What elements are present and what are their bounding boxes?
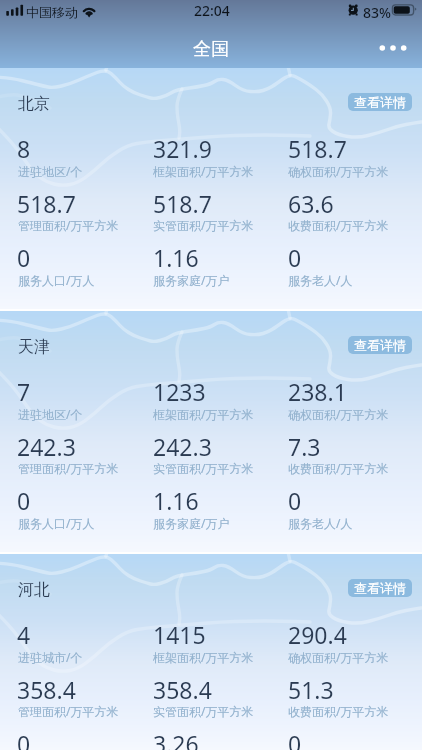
staticText: 242.3: [17, 431, 76, 462]
staticText: 服务老人/人: [288, 272, 353, 288]
staticText: 242.3: [153, 431, 212, 462]
staticText: 290.4: [288, 619, 347, 650]
staticText: 服务家庭/万户: [153, 515, 230, 531]
staticText: 确权面积/万平方米: [288, 649, 389, 665]
staticText: 83%: [363, 3, 391, 22]
staticText: 7: [17, 376, 31, 407]
staticText: 框架面积/万平方米: [153, 163, 254, 179]
staticText: 框架面积/万平方米: [153, 649, 254, 665]
staticText: 框架面积/万平方米: [153, 406, 254, 422]
button[interactable]: 天津: [0, 311, 422, 552]
button[interactable]: More options: [370, 32, 416, 64]
staticText: 1233: [153, 376, 206, 407]
staticText: 0: [17, 242, 31, 273]
staticText: 确权面积/万平方米: [288, 406, 389, 422]
staticText: 0: [288, 242, 302, 273]
staticText: 0: [288, 485, 302, 516]
button[interactable]: 北京: [0, 68, 422, 309]
staticText: 7.3: [288, 431, 321, 462]
staticText: 0: [17, 728, 31, 750]
staticText: 河北: [18, 580, 50, 600]
staticText: 进驻地区/个: [18, 406, 83, 422]
staticText: 查看详情: [354, 580, 406, 596]
button[interactable]: 查看详情: [348, 93, 412, 111]
staticText: 358.4: [17, 674, 76, 705]
staticText: 北京: [18, 94, 50, 114]
staticText: 8: [17, 133, 31, 164]
staticText: 管理面积/万平方米: [18, 217, 119, 233]
staticText: 1415: [153, 619, 206, 650]
button[interactable]: 查看详情: [348, 336, 412, 354]
button[interactable]: 查看详情: [348, 579, 412, 597]
staticText: 收费面积/万平方米: [288, 217, 389, 233]
staticText: 321.9: [153, 133, 212, 164]
staticText: 天津: [18, 337, 50, 357]
staticText: 管理面积/万平方米: [18, 460, 119, 476]
staticText: 实管面积/万平方米: [153, 217, 254, 233]
staticText: 确权面积/万平方米: [288, 163, 389, 179]
staticText: 0: [17, 485, 31, 516]
staticText: 518.7: [153, 188, 212, 219]
staticText: 518.7: [288, 133, 347, 164]
staticText: 51.3: [288, 674, 334, 705]
staticText: 服务人口/万人: [18, 272, 95, 288]
staticText: 22:04: [194, 1, 230, 20]
staticText: 3.26: [153, 728, 199, 750]
staticText: 服务家庭/万户: [153, 272, 230, 288]
staticText: 服务人口/万人: [18, 515, 95, 531]
staticText: 0: [288, 728, 302, 750]
staticText: 518.7: [17, 188, 76, 219]
staticText: 中国移动: [26, 4, 78, 20]
staticText: 238.1: [288, 376, 347, 407]
staticText: 63.6: [288, 188, 334, 219]
staticText: 1.16: [153, 242, 199, 273]
staticText: 4: [17, 619, 31, 650]
staticText: 服务老人/人: [288, 515, 353, 531]
staticText: 收费面积/万平方米: [288, 460, 389, 476]
staticText: 实管面积/万平方米: [153, 460, 254, 476]
staticText: 管理面积/万平方米: [18, 703, 119, 719]
staticText: 1.16: [153, 485, 199, 516]
staticText: 进驻城市/个: [18, 649, 83, 665]
staticText: 全国: [193, 38, 229, 61]
button[interactable]: 河北: [0, 554, 422, 750]
staticText: 进驻地区/个: [18, 163, 83, 179]
staticText: 收费面积/万平方米: [288, 703, 389, 719]
staticText: 实管面积/万平方米: [153, 703, 254, 719]
staticText: 查看详情: [354, 94, 406, 110]
staticText: 358.4: [153, 674, 212, 705]
staticText: 查看详情: [354, 337, 406, 353]
